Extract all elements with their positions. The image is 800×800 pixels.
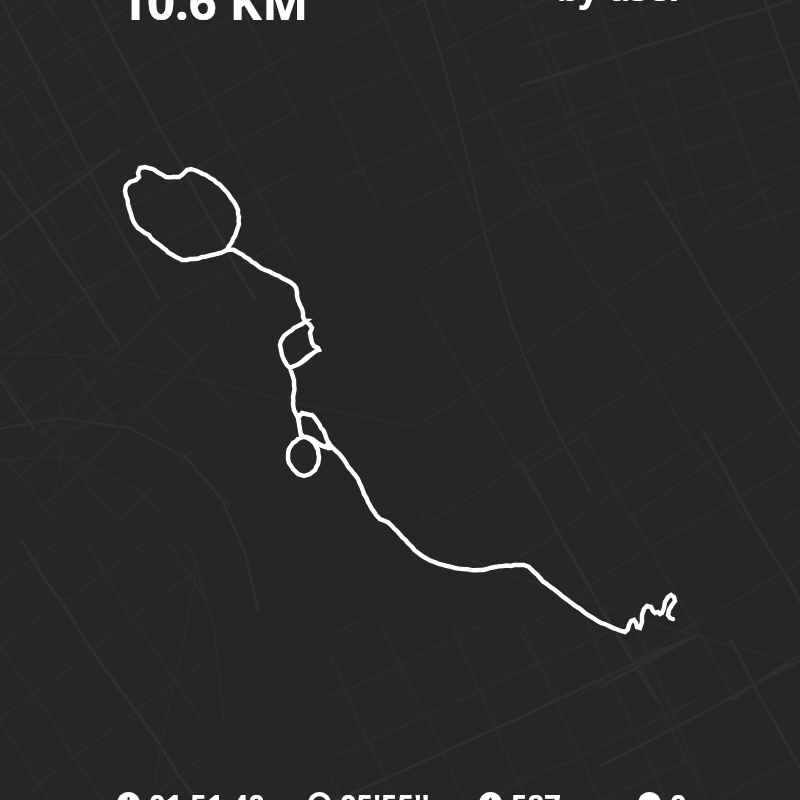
staticText: 0 bbox=[670, 785, 687, 800]
staticText: 10.6 KM bbox=[119, 0, 309, 35]
button[interactable]: 01:51:40 bbox=[117, 792, 265, 800]
button[interactable]: 05'55'' bbox=[308, 792, 430, 800]
staticText: by user bbox=[557, 0, 685, 12]
staticText: 587 bbox=[511, 785, 561, 800]
staticText: 01:51:40 bbox=[149, 785, 265, 800]
button[interactable]: Route map bbox=[0, 0, 800, 800]
button[interactable]: 0 bbox=[638, 792, 687, 800]
staticText: 05'55'' bbox=[340, 785, 430, 800]
button[interactable]: 587 bbox=[479, 792, 561, 800]
